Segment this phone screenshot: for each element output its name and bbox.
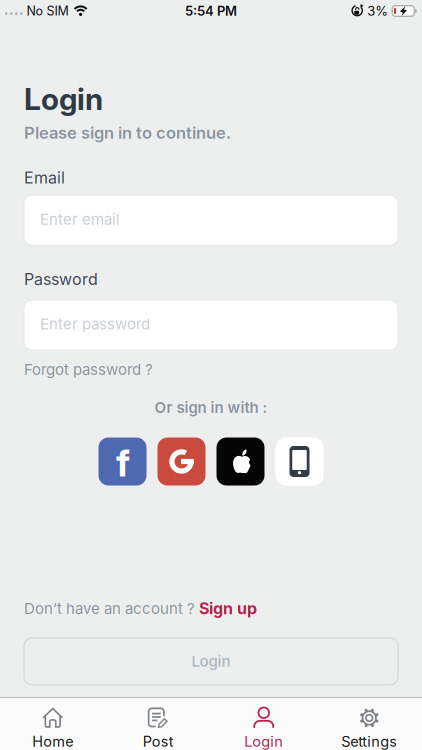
staticText: Login [244, 733, 283, 750]
staticText: No SIM [27, 4, 69, 18]
staticText: Home [32, 733, 73, 750]
button[interactable]: Settings [316, 706, 422, 750]
staticText: Login [191, 652, 230, 670]
button[interactable]: Enter email [24, 195, 398, 245]
staticText: Email [24, 168, 65, 187]
staticText: Sign up [199, 599, 257, 618]
staticText: Enter email [40, 210, 120, 228]
staticText: Password [24, 270, 98, 289]
button[interactable]: Login [211, 706, 316, 750]
button[interactable]: Home [0, 706, 105, 750]
button[interactable]: Sign in with Apple [216, 437, 264, 485]
staticText: Enter password [40, 315, 150, 333]
staticText: Post [143, 733, 174, 750]
staticText: Login [24, 81, 103, 117]
button[interactable]: Sign in with Facebook [98, 437, 146, 485]
button[interactable]: Post [105, 706, 211, 750]
staticText: Don’t have an account ? [24, 600, 195, 617]
staticText: Please sign in to continue. [24, 123, 231, 142]
button[interactable]: Enter password [24, 300, 398, 350]
staticText: Forgot password ? [24, 361, 153, 378]
staticText: Or sign in with : [154, 399, 267, 416]
button[interactable]: Sign in with phone [275, 437, 323, 485]
staticText: 5:54 PM [185, 3, 237, 19]
button[interactable]: Forgot password ? [24, 361, 153, 378]
staticText: f [116, 441, 130, 485]
button[interactable]: Login [24, 638, 398, 685]
button[interactable]: Sign in with Google [157, 437, 205, 485]
staticText: 3% [367, 3, 388, 19]
button[interactable]: Sign up [199, 599, 257, 618]
staticText: Settings [341, 733, 397, 750]
